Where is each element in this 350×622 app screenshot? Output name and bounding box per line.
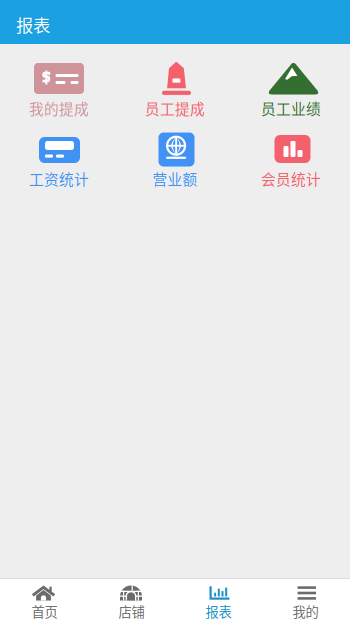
staticText: 首页 (31, 601, 57, 621)
staticText: 报表 (205, 601, 231, 621)
button[interactable]: 员工提成 (117, 44, 233, 118)
button[interactable]: 报表 (175, 579, 262, 622)
staticText: 员工业绩 (261, 97, 321, 119)
staticText: 报表 (16, 12, 50, 37)
button[interactable]: 会员统计 (233, 118, 349, 192)
button[interactable]: 员工业绩 (233, 44, 349, 118)
staticText: 我的提成 (29, 97, 89, 119)
button[interactable]: 首页 (1, 579, 88, 622)
button[interactable]: 营业额 (117, 118, 233, 192)
button[interactable]: 店铺 (88, 579, 175, 622)
button[interactable]: 我的提成 (1, 44, 117, 118)
staticText: 会员统计 (261, 168, 321, 189)
button[interactable]: 我的 (262, 579, 349, 622)
staticText: 员工提成 (145, 97, 205, 119)
button[interactable]: 工资统计 (1, 118, 117, 192)
staticText: 店铺 (118, 601, 144, 621)
staticText: 我的 (292, 601, 318, 621)
staticText: 营业额 (152, 168, 197, 189)
staticText: 工资统计 (29, 168, 89, 189)
